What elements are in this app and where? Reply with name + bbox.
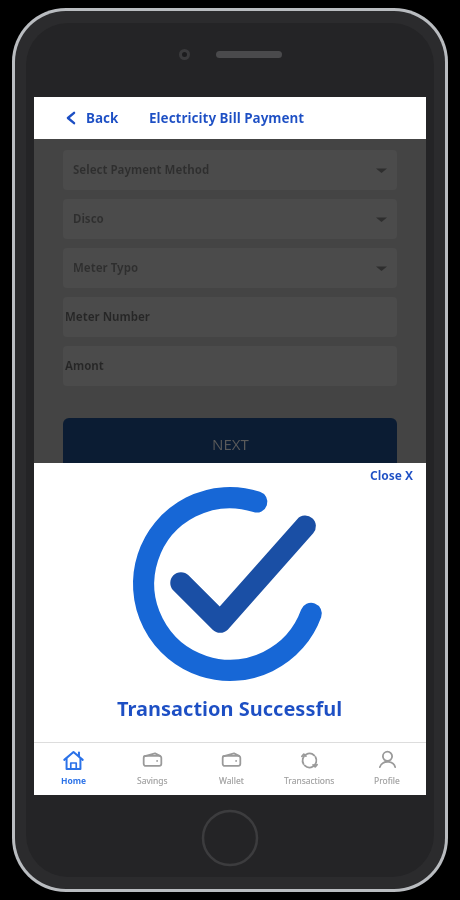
button[interactable]: Amont [63,346,397,386]
button[interactable]: Back [34,103,127,133]
staticText: Close X [370,467,414,483]
staticText: Transaction Successful [117,695,343,722]
button[interactable]: Profile [348,742,426,795]
button[interactable]: NEXT [63,418,397,470]
staticText: Savings [137,775,168,787]
button[interactable]: Meter Typo [63,248,397,288]
button[interactable]: Close X [360,463,426,489]
staticText: Transactions [284,775,335,787]
button[interactable]: Home [34,742,113,795]
button[interactable]: Meter Number [63,297,397,337]
staticText: Meter Number [65,309,151,325]
staticText: Back [86,109,119,127]
staticText: Meter Typo [73,260,139,276]
staticText: Home [61,775,87,787]
button[interactable]: Select Payment Method [63,150,397,190]
button[interactable]: Wallet [192,742,270,795]
staticText: Electricity Bill Payment [149,109,305,127]
staticText: Select Payment Method [73,162,210,178]
staticText: Profile [374,775,400,787]
button[interactable]: Transactions [270,742,348,795]
staticText: NEXT [212,434,249,454]
staticText: Disco [73,211,104,227]
staticText: Amont [65,358,104,374]
button[interactable]: Savings [113,742,192,795]
staticText: Wallet [219,775,244,787]
